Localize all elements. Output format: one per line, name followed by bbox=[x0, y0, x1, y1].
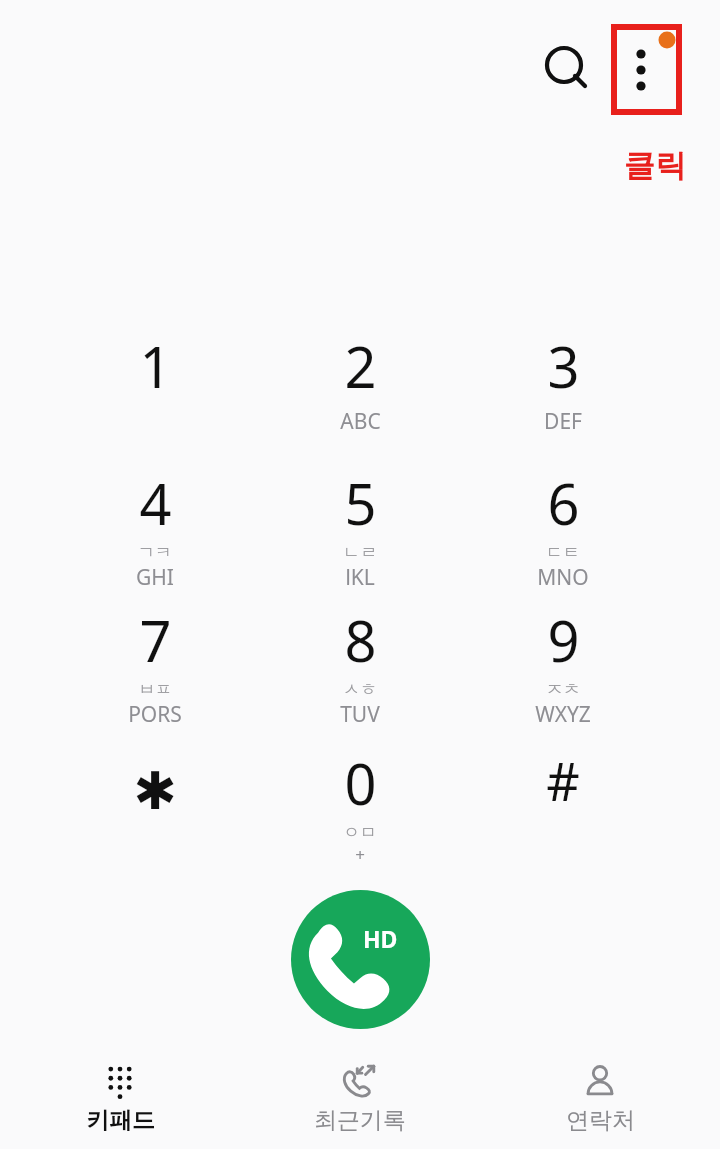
button[interactable]: 7 bbox=[75, 592, 235, 722]
staticText: DEF bbox=[544, 407, 582, 436]
staticText: ✱ bbox=[133, 761, 177, 822]
staticText: ㅂㅍ bbox=[138, 679, 172, 700]
button[interactable]: # bbox=[483, 735, 643, 865]
staticText: 4 bbox=[139, 465, 172, 541]
button[interactable]: 5 bbox=[280, 455, 440, 585]
staticText: ㄱㅋ bbox=[138, 542, 172, 563]
staticText: GHI bbox=[136, 563, 174, 585]
staticText: # bbox=[546, 745, 580, 816]
staticText: MNO bbox=[537, 563, 589, 585]
staticText: ㅈㅊ bbox=[546, 679, 580, 700]
button[interactable]: 4 bbox=[75, 455, 235, 585]
button[interactable]: Search bbox=[531, 33, 601, 103]
staticText: 8 bbox=[344, 602, 377, 678]
staticText: 6 bbox=[547, 465, 580, 541]
button[interactable]: ✱ bbox=[75, 735, 235, 865]
staticText: WXYZ bbox=[535, 700, 591, 722]
button[interactable]: 0 bbox=[280, 735, 440, 865]
button[interactable]: 1 bbox=[75, 318, 235, 448]
button[interactable]: 6 bbox=[483, 455, 643, 585]
staticText: 연락처 bbox=[566, 1106, 635, 1135]
button[interactable]: 연락처 bbox=[480, 1049, 720, 1149]
staticText: 키패드 bbox=[86, 1106, 155, 1135]
button[interactable]: More options bbox=[611, 24, 682, 115]
staticText: 2 bbox=[344, 328, 377, 404]
staticText: TUV bbox=[340, 700, 380, 722]
button[interactable]: 3 bbox=[483, 318, 643, 448]
staticText: 클릭 bbox=[612, 146, 698, 185]
button[interactable]: 최근기록 bbox=[240, 1049, 480, 1149]
staticText: ㅇㅁ bbox=[343, 822, 377, 843]
staticText: ABC bbox=[340, 407, 381, 436]
staticText: + bbox=[355, 843, 365, 865]
staticText: 최근기록 bbox=[314, 1106, 406, 1135]
button[interactable]: 키패드 bbox=[0, 1049, 240, 1149]
staticText: 0 bbox=[344, 745, 377, 821]
staticText: ㄴㄹ bbox=[343, 542, 377, 563]
staticText: 9 bbox=[547, 602, 580, 678]
staticText: 1 bbox=[139, 328, 172, 404]
staticText: 3 bbox=[547, 328, 580, 404]
button[interactable]: 9 bbox=[483, 592, 643, 722]
staticText: JKL bbox=[345, 563, 375, 585]
button[interactable]: 8 bbox=[280, 592, 440, 722]
staticText: 5 bbox=[344, 465, 377, 541]
staticText: ㅅㅎ bbox=[343, 679, 377, 700]
button[interactable]: Call bbox=[291, 890, 430, 1029]
staticText: ㄷㅌ bbox=[546, 542, 580, 563]
button[interactable]: 2 bbox=[280, 318, 440, 448]
staticText: 7 bbox=[139, 602, 172, 678]
staticText: HD bbox=[363, 923, 398, 954]
staticText: PQRS bbox=[128, 700, 182, 722]
